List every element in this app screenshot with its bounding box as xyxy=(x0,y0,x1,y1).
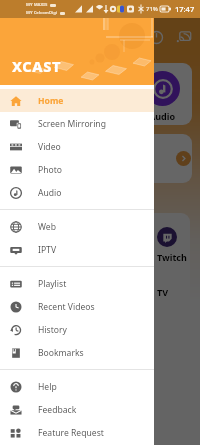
staticText: IPTV xyxy=(38,244,57,256)
staticText: 71% xyxy=(146,5,158,13)
button[interactable]: Feature Request xyxy=(0,421,154,444)
staticText: Feature Request xyxy=(38,427,104,439)
button[interactable] xyxy=(8,134,192,183)
staticText: Screen Mirroring xyxy=(38,118,106,130)
button[interactable]: Recent Videos xyxy=(0,295,154,318)
staticText: MY CelcomDigi xyxy=(26,10,58,16)
staticText: Twitch xyxy=(157,251,187,263)
staticText: Video xyxy=(88,110,114,122)
staticText: Web xyxy=(38,221,56,233)
button[interactable]: Screen Mirroring xyxy=(0,112,154,135)
staticText: MY MAXIS xyxy=(26,2,48,8)
button[interactable]: Photo xyxy=(0,158,154,181)
staticText: XCAST xyxy=(12,56,62,76)
staticText: Playlist xyxy=(38,278,67,290)
button[interactable]: IPTV xyxy=(0,238,154,261)
button[interactable]: Audio xyxy=(133,63,192,125)
staticText: Feedback xyxy=(38,404,77,416)
staticText: TV xyxy=(157,286,169,298)
button[interactable]: Feedback xyxy=(0,398,154,421)
button[interactable]: Premium xyxy=(146,27,166,47)
button[interactable]: Video xyxy=(8,63,68,125)
button[interactable]: Home xyxy=(0,89,154,112)
staticText: Help xyxy=(38,381,57,393)
staticText: Home xyxy=(38,95,64,107)
staticText: Photo xyxy=(38,164,63,176)
button[interactable]: Playlist xyxy=(0,272,154,295)
button[interactable]: History xyxy=(0,318,154,341)
staticText: 17:47 xyxy=(175,4,195,14)
button[interactable]: Twitch xyxy=(8,213,190,323)
button[interactable]: Audio xyxy=(0,181,154,204)
staticText: Recent Videos xyxy=(38,301,95,313)
button[interactable]: Web xyxy=(0,215,154,238)
staticText: Bookmarks xyxy=(38,347,84,359)
button[interactable]: Help xyxy=(0,375,154,398)
button[interactable]: Bookmarks xyxy=(0,341,154,364)
button[interactable]: Video xyxy=(71,63,130,125)
staticText: Audio xyxy=(149,110,176,122)
staticText: Video xyxy=(26,110,52,122)
staticText: History xyxy=(38,324,67,336)
staticText: Audio xyxy=(38,187,62,199)
button[interactable]: Cast xyxy=(174,27,194,47)
staticText: Video xyxy=(38,141,61,153)
button[interactable]: Video xyxy=(0,135,154,158)
